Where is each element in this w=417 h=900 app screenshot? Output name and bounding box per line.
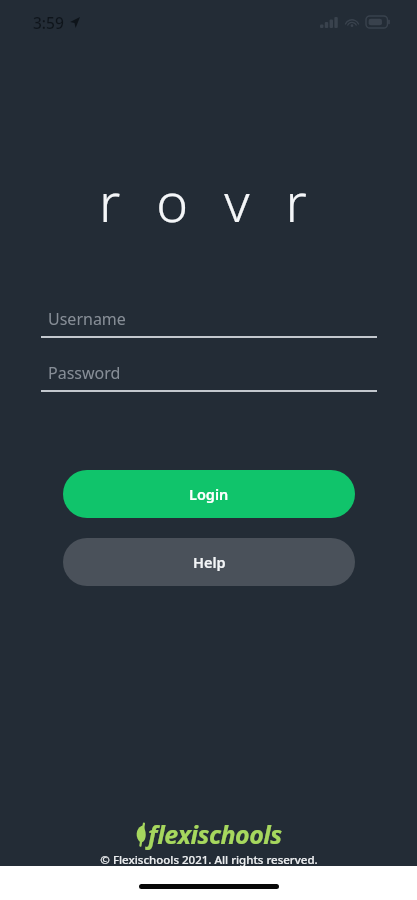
button[interactable]: Login (63, 470, 355, 518)
button[interactable]: Password (41, 356, 377, 392)
staticText: r o v r (99, 164, 318, 238)
button[interactable]: Username (41, 302, 377, 338)
staticText: Help (193, 552, 226, 572)
staticText: flexischools (148, 817, 282, 851)
staticText: 3:59 (33, 12, 64, 33)
staticText: © Flexischools 2021. All rights reserved… (100, 852, 318, 866)
staticText: Login (189, 484, 229, 504)
staticText: Username (48, 308, 126, 330)
staticText: Password (48, 362, 121, 384)
button[interactable]: Help (63, 538, 355, 586)
